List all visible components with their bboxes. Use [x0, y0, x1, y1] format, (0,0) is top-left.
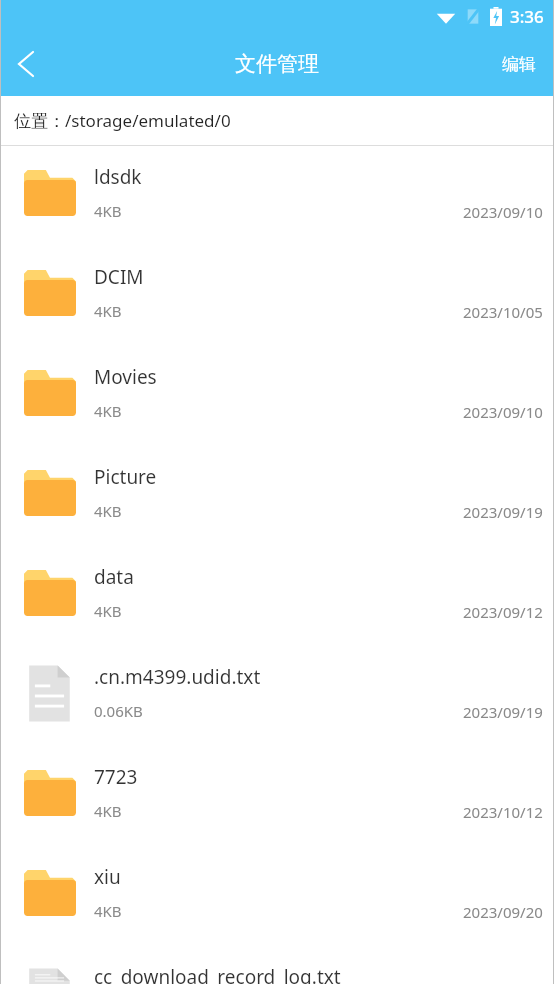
staticText: 2023/09/10 [463, 402, 543, 422]
button[interactable]: Picture [0, 446, 554, 546]
staticText: 4KB [94, 801, 122, 821]
staticText: 4KB [94, 601, 122, 621]
staticText: 2023/09/12 [463, 602, 543, 622]
staticText: 4KB [94, 201, 122, 221]
staticText: 2023/09/19 [463, 502, 543, 522]
staticText: Picture [94, 464, 157, 490]
button[interactable]: Back [0, 38, 52, 90]
button[interactable]: ldsdk [0, 146, 554, 246]
staticText: 3:36 [510, 5, 544, 28]
button[interactable]: 7723 [0, 746, 554, 846]
staticText: 4KB [94, 501, 122, 521]
staticText: 0.06KB [94, 701, 143, 721]
staticText: xiu [94, 864, 121, 890]
button[interactable]: .cn.m4399.udid.txt [0, 646, 554, 746]
button[interactable]: data [0, 546, 554, 646]
button[interactable]: cc_download_record_log.txt [0, 946, 554, 984]
staticText: 2023/10/12 [463, 802, 543, 822]
staticText: cc_download_record_log.txt [94, 964, 341, 984]
staticText: 2023/09/20 [463, 902, 543, 922]
staticText: 文件管理 [235, 51, 319, 77]
staticText: 2023/09/19 [463, 702, 543, 722]
staticText: 7723 [94, 764, 138, 790]
button[interactable]: xiu [0, 846, 554, 946]
staticText: ldsdk [94, 164, 142, 190]
staticText: 编辑 [502, 54, 536, 75]
staticText: Movies [94, 364, 157, 390]
staticText: 4KB [94, 301, 122, 321]
button[interactable]: DCIM [0, 246, 554, 346]
staticText: .cn.m4399.udid.txt [94, 664, 261, 690]
staticText: 4KB [94, 901, 122, 921]
button[interactable]: 编辑 [484, 40, 554, 89]
staticText: 2023/09/10 [463, 202, 543, 222]
staticText: DCIM [94, 264, 144, 290]
staticText: 2023/10/05 [463, 302, 543, 322]
button[interactable]: Movies [0, 346, 554, 446]
staticText: 位置：/storage/emulated/0 [14, 109, 231, 132]
staticText: 4KB [94, 401, 122, 421]
staticText: data [94, 564, 134, 590]
